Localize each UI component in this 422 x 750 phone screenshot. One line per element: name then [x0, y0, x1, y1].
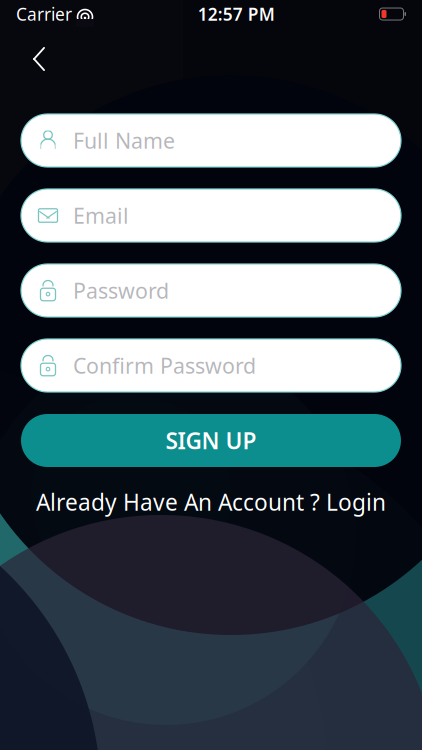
button[interactable]: Back [22, 42, 56, 76]
staticText: SIGN UP [165, 425, 256, 455]
button[interactable]: SIGN UP [21, 414, 401, 467]
staticText: Already Have An Account ? Login [36, 487, 386, 517]
staticText: Full Name [73, 126, 175, 155]
staticText: Email [73, 201, 129, 230]
staticText: Password [73, 276, 169, 305]
staticText: Confirm Password [73, 351, 256, 380]
staticText: 12:57 PM [198, 2, 275, 25]
staticText: Carrier [16, 2, 72, 25]
button[interactable]: Already Have An Account ? Login [0, 479, 422, 525]
